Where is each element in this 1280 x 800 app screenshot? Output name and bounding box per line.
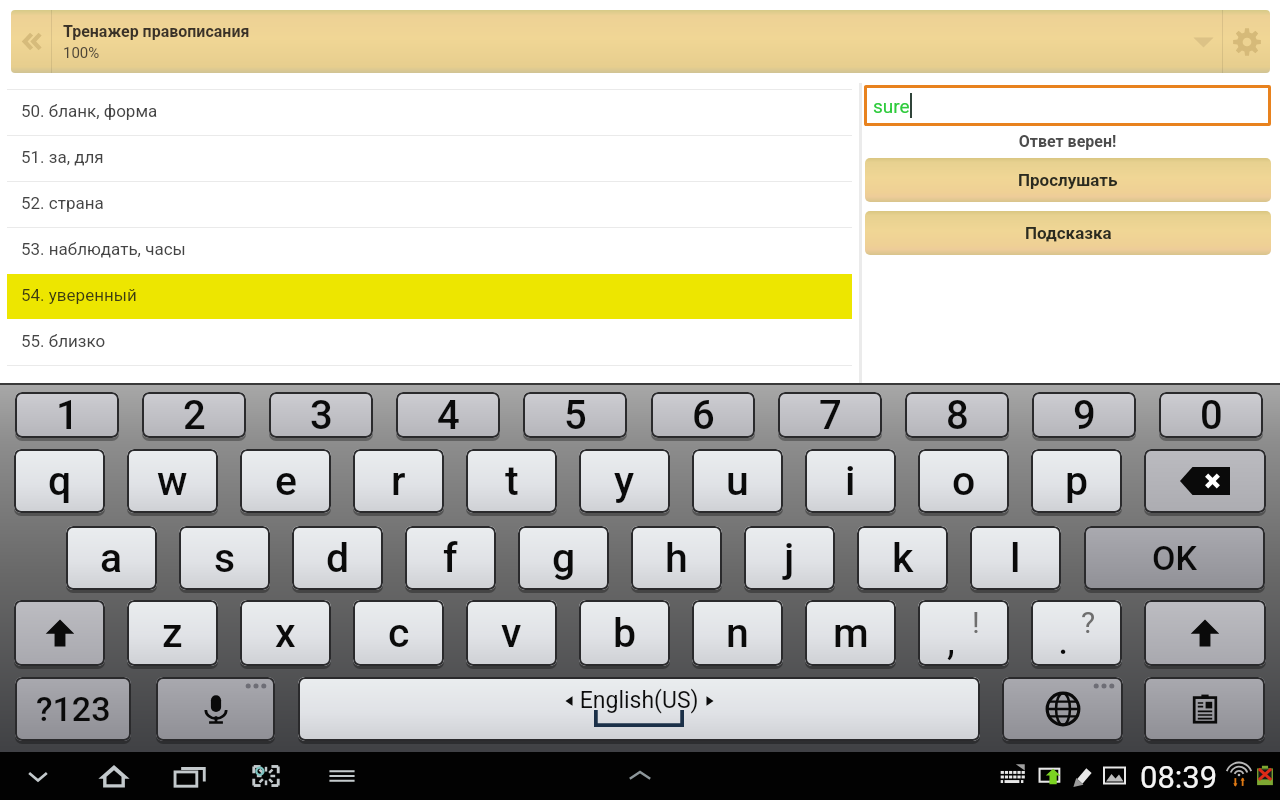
staticText: 100% xyxy=(63,44,100,62)
staticText: , xyxy=(947,617,955,664)
button[interactable]: Home xyxy=(76,752,152,800)
staticText: u xyxy=(726,457,749,505)
button[interactable]: 1 xyxy=(15,392,119,438)
button[interactable]: r xyxy=(353,449,444,513)
button[interactable]: sure xyxy=(864,85,1271,126)
button[interactable]: Shift xyxy=(14,600,105,666)
staticText: e xyxy=(275,457,297,505)
button[interactable]: w xyxy=(127,449,218,513)
button[interactable]: Back xyxy=(0,752,76,800)
button[interactable]: 53. наблюдать, часы xyxy=(7,228,852,273)
staticText: k xyxy=(892,534,914,582)
button[interactable]: Recents xyxy=(152,752,228,800)
staticText: m xyxy=(833,609,869,657)
staticText: w xyxy=(157,457,188,505)
staticText: English(US) xyxy=(574,687,705,714)
button[interactable]: v xyxy=(466,600,557,666)
button[interactable]: o xyxy=(918,449,1009,513)
staticText: ? xyxy=(1081,605,1096,640)
button[interactable]: d xyxy=(292,526,383,590)
staticText: v xyxy=(501,609,522,657)
button[interactable]: k xyxy=(857,526,948,590)
button[interactable]: 55. близко xyxy=(7,320,852,365)
button[interactable]: y xyxy=(579,449,670,513)
staticText: . xyxy=(1058,617,1069,664)
button[interactable]: x xyxy=(240,600,331,666)
button[interactable]: z xyxy=(127,600,218,666)
button[interactable]: 5 xyxy=(523,392,627,438)
button[interactable]: Settings xyxy=(1223,10,1270,73)
button[interactable]: ? xyxy=(1031,600,1122,666)
staticText: ! xyxy=(972,605,980,640)
button[interactable]: 6 xyxy=(651,392,755,438)
staticText: a xyxy=(100,534,123,582)
button[interactable]: l xyxy=(970,526,1061,590)
button[interactable]: Back xyxy=(11,10,51,73)
button[interactable]: 2 xyxy=(142,392,246,438)
staticText: 5 xyxy=(564,392,587,438)
staticText: 51. за, для xyxy=(21,147,104,167)
button[interactable]: f xyxy=(405,526,496,590)
button[interactable]: 4 xyxy=(396,392,500,438)
button[interactable]: s xyxy=(179,526,270,590)
button[interactable]: 50. бланк, форма xyxy=(7,90,852,135)
button[interactable]: h xyxy=(631,526,722,590)
button[interactable]: 3 xyxy=(269,392,373,438)
button[interactable]: j xyxy=(744,526,835,590)
button[interactable]: e xyxy=(240,449,331,513)
staticText: l xyxy=(1010,534,1021,582)
staticText: ?123 xyxy=(36,689,111,729)
button[interactable]: i xyxy=(805,449,896,513)
button[interactable]: c xyxy=(353,600,444,666)
button[interactable]: t xyxy=(466,449,557,513)
staticText: Прослушать xyxy=(1018,170,1118,190)
button[interactable]: Clipboard xyxy=(1144,677,1265,741)
staticText: r xyxy=(391,457,406,505)
button[interactable]: u xyxy=(692,449,783,513)
button[interactable]: Подсказка xyxy=(865,211,1271,255)
staticText: f xyxy=(443,534,458,582)
staticText: h xyxy=(665,534,688,582)
button[interactable]: 9 xyxy=(1032,392,1136,438)
button[interactable]: 0 xyxy=(1159,392,1263,438)
button[interactable]: Прослушать xyxy=(865,158,1271,202)
staticText: o xyxy=(952,457,976,505)
button[interactable]: Backspace xyxy=(1144,449,1266,513)
button[interactable]: Space xyxy=(298,677,980,741)
staticText: i xyxy=(845,457,856,505)
staticText: sure xyxy=(873,95,910,117)
button[interactable]: 7 xyxy=(778,392,882,438)
button[interactable]: Show more xyxy=(1156,10,1222,73)
staticText: Ответ верен! xyxy=(862,132,1273,151)
staticText: 1 xyxy=(56,392,79,438)
button[interactable]: p xyxy=(1031,449,1122,513)
button[interactable]: 51. за, для xyxy=(7,136,852,181)
staticText: 52. страна xyxy=(21,193,104,213)
staticText: OK xyxy=(1152,538,1197,578)
button[interactable]: ?123 xyxy=(15,677,131,741)
button[interactable]: Menu xyxy=(304,752,380,800)
button[interactable]: Screenshot xyxy=(228,752,304,800)
button[interactable]: 8 xyxy=(905,392,1009,438)
staticText: q xyxy=(48,457,72,505)
staticText: y xyxy=(614,457,635,505)
button[interactable]: 54. уверенный xyxy=(7,274,852,319)
button[interactable]: q xyxy=(14,449,105,513)
button[interactable]: ! xyxy=(918,600,1009,666)
staticText: n xyxy=(726,609,749,657)
staticText: 9 xyxy=(1073,392,1096,438)
button[interactable]: Change language xyxy=(1002,677,1123,741)
staticText: 7 xyxy=(819,392,842,438)
staticText: 0 xyxy=(1200,392,1223,438)
button[interactable]: Voice input xyxy=(156,677,275,741)
staticText: 55. близко xyxy=(21,331,106,351)
button[interactable]: 52. страна xyxy=(7,182,852,227)
button[interactable]: g xyxy=(518,526,609,590)
button[interactable]: Shift xyxy=(1144,600,1266,666)
button[interactable]: a xyxy=(66,526,157,590)
button[interactable]: OK xyxy=(1084,526,1265,590)
button[interactable]: b xyxy=(579,600,670,666)
button[interactable]: n xyxy=(692,600,783,666)
staticText: s xyxy=(214,534,236,582)
button[interactable]: m xyxy=(805,600,896,666)
